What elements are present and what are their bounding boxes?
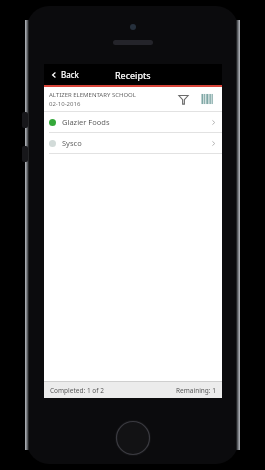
button[interactable]: Glazier Foods	[44, 112, 222, 133]
staticText: ALTIZER ELEMENTARY SCHOOL	[49, 91, 136, 99]
button[interactable]: Back	[50, 69, 79, 80]
staticText: 02-10-2016	[49, 100, 81, 108]
staticText: Sysco	[62, 138, 210, 148]
staticText: Back	[61, 69, 79, 80]
staticText: Glazier Foods	[62, 117, 210, 127]
button[interactable]: Scan barcode	[197, 89, 217, 109]
staticText: Remaining: 1	[176, 386, 216, 395]
staticText: Receipts	[115, 69, 151, 81]
button[interactable]: Sysco	[44, 133, 222, 154]
staticText: Completed: 1 of 2	[50, 386, 104, 395]
button[interactable]: Filter	[173, 89, 193, 109]
